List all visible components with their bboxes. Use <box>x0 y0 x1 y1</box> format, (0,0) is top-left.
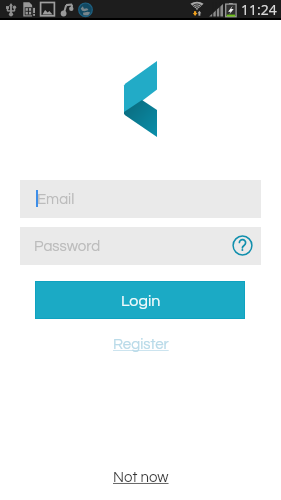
staticText: Password <box>34 239 101 254</box>
staticText: Login <box>121 293 161 309</box>
button[interactable]: Not now <box>113 470 169 485</box>
staticText: 11:24 <box>241 0 277 19</box>
button[interactable]: Register <box>113 337 169 352</box>
button[interactable]: Email <box>20 180 261 218</box>
button[interactable]: Help <box>228 231 257 260</box>
button[interactable]: Password <box>20 227 261 265</box>
staticText: Email <box>37 192 75 207</box>
button[interactable]: Login <box>35 281 245 319</box>
